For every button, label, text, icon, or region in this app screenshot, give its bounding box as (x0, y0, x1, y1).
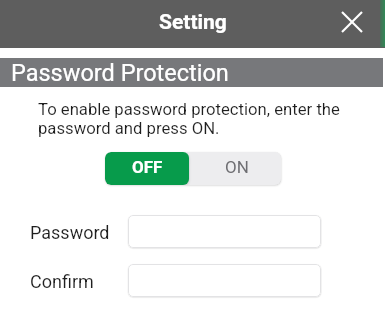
button[interactable]: OFF (105, 152, 189, 185)
button[interactable]: Password input field (128, 215, 321, 248)
staticText: To enable password protection, enter the… (38, 100, 358, 138)
button[interactable]: Close (335, 5, 369, 39)
staticText: Password (30, 222, 110, 243)
button[interactable]: Confirm password input field (128, 264, 321, 297)
staticText: OFF (132, 157, 163, 177)
staticText: Setting (159, 10, 227, 35)
staticText: Confirm (30, 271, 94, 292)
staticText: ON (225, 157, 249, 177)
button[interactable]: ON (189, 152, 281, 185)
staticText: Password Protection (11, 59, 229, 87)
